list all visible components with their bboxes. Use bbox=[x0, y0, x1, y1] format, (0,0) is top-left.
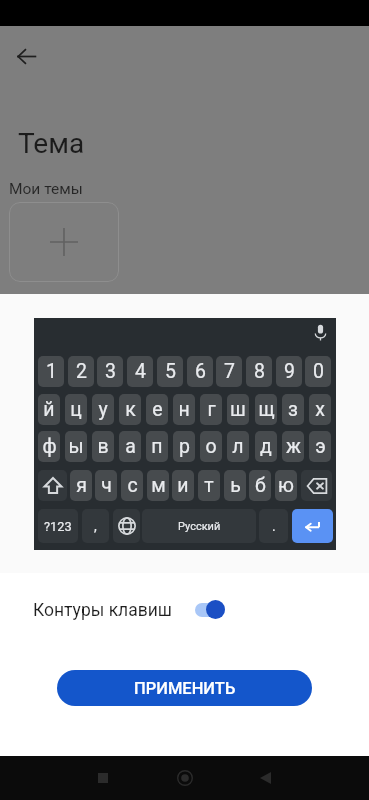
button[interactable]: щ bbox=[255, 394, 277, 425]
button[interactable]: Home bbox=[165, 758, 205, 798]
staticText: 6 bbox=[195, 360, 206, 383]
staticText: к bbox=[125, 398, 136, 421]
staticText: Контуры клавиш bbox=[33, 600, 172, 621]
button[interactable]: Русский bbox=[142, 509, 256, 543]
button[interactable]: н bbox=[173, 394, 195, 425]
button[interactable]: й bbox=[38, 394, 60, 425]
button[interactable]: э bbox=[309, 431, 331, 462]
button[interactable]: м bbox=[147, 470, 169, 501]
button[interactable]: е bbox=[146, 394, 168, 425]
button[interactable]: 7 bbox=[216, 356, 242, 387]
staticText: й bbox=[43, 398, 55, 421]
staticText: , bbox=[94, 518, 97, 534]
staticText: д bbox=[260, 435, 272, 458]
button[interactable]: ?123 bbox=[38, 509, 78, 543]
button[interactable]: 4 bbox=[127, 356, 153, 387]
button[interactable]: ч bbox=[95, 470, 117, 501]
button[interactable]: ж bbox=[282, 431, 304, 462]
button[interactable]: Key borders bbox=[193, 599, 227, 621]
button[interactable]: я bbox=[70, 470, 92, 501]
staticText: 4 bbox=[135, 360, 146, 383]
staticText: 0 bbox=[313, 360, 324, 383]
staticText: у bbox=[98, 398, 108, 421]
staticText: 9 bbox=[284, 360, 295, 383]
staticText: х bbox=[315, 398, 325, 421]
staticText: б bbox=[255, 474, 266, 497]
staticText: ?123 bbox=[44, 519, 72, 534]
staticText: Русский bbox=[178, 520, 221, 533]
button[interactable]: р bbox=[173, 431, 195, 462]
button[interactable]: г bbox=[200, 394, 222, 425]
button[interactable]: 6 bbox=[187, 356, 213, 387]
button[interactable]: п bbox=[146, 431, 168, 462]
staticText: о bbox=[205, 435, 217, 458]
button[interactable]: Контуры клавиш bbox=[0, 583, 369, 635]
staticText: ь bbox=[230, 474, 241, 497]
staticText: м bbox=[151, 474, 166, 497]
button[interactable]: Recents bbox=[83, 758, 123, 798]
button[interactable]: ы bbox=[65, 431, 87, 462]
button[interactable]: у bbox=[92, 394, 114, 425]
button[interactable]: ш bbox=[227, 394, 249, 425]
button[interactable]: 3 bbox=[97, 356, 123, 387]
button[interactable]: х bbox=[309, 394, 331, 425]
button[interactable]: в bbox=[92, 431, 114, 462]
button[interactable]: а bbox=[119, 431, 141, 462]
staticText: ы bbox=[68, 435, 84, 458]
button[interactable]: Back bbox=[10, 40, 42, 72]
staticText: ж bbox=[286, 435, 301, 458]
button[interactable]: ПРИМЕНИТЬ bbox=[57, 670, 312, 706]
button[interactable]: к bbox=[119, 394, 141, 425]
button[interactable]: 8 bbox=[246, 356, 272, 387]
button[interactable] bbox=[301, 470, 332, 501]
button[interactable]: с bbox=[121, 470, 143, 501]
staticText: ц bbox=[70, 398, 82, 421]
button[interactable]: 0 bbox=[305, 356, 331, 387]
staticText: е bbox=[152, 398, 163, 421]
button[interactable]: ц bbox=[65, 394, 87, 425]
button[interactable]: ю bbox=[275, 470, 297, 501]
staticText: 8 bbox=[254, 360, 265, 383]
staticText: п bbox=[151, 435, 163, 458]
staticText: 5 bbox=[165, 360, 176, 383]
button[interactable]: . bbox=[259, 509, 288, 543]
button[interactable]: з bbox=[282, 394, 304, 425]
staticText: ю bbox=[278, 474, 294, 497]
button[interactable]: Voice input bbox=[311, 323, 330, 342]
button[interactable]: Enter bbox=[292, 509, 333, 543]
button[interactable]: 2 bbox=[68, 356, 94, 387]
button[interactable]: , bbox=[82, 509, 109, 543]
staticText: г bbox=[207, 398, 216, 421]
staticText: . bbox=[272, 518, 276, 534]
button[interactable]: и bbox=[172, 470, 194, 501]
staticText: 2 bbox=[76, 360, 87, 383]
button[interactable]: Add theme bbox=[9, 202, 119, 282]
button[interactable]: 9 bbox=[276, 356, 302, 387]
button[interactable]: Back bbox=[245, 758, 285, 798]
button[interactable]: Change language bbox=[113, 509, 140, 543]
button[interactable]: ь bbox=[224, 470, 246, 501]
staticText: 7 bbox=[224, 360, 235, 383]
button[interactable]: б bbox=[249, 470, 271, 501]
button[interactable]: д bbox=[255, 431, 277, 462]
staticText: Тема bbox=[18, 127, 85, 160]
staticText: н bbox=[178, 398, 190, 421]
staticText: с bbox=[127, 474, 138, 497]
staticText: ш bbox=[230, 398, 246, 421]
staticText: з bbox=[288, 398, 298, 421]
staticText: т bbox=[204, 474, 214, 497]
staticText: Мои темы bbox=[9, 180, 83, 198]
button[interactable]: л bbox=[227, 431, 249, 462]
staticText: ПРИМЕНИТЬ bbox=[134, 679, 236, 698]
button[interactable]: 5 bbox=[157, 356, 183, 387]
staticText: р bbox=[179, 435, 190, 458]
staticText: в bbox=[97, 435, 109, 458]
button[interactable]: т bbox=[198, 470, 220, 501]
staticText: щ bbox=[258, 398, 275, 421]
button[interactable] bbox=[38, 470, 67, 501]
button[interactable]: 1 bbox=[38, 356, 64, 387]
button[interactable]: ф bbox=[38, 431, 60, 462]
staticText: 1 bbox=[46, 360, 57, 383]
button[interactable]: о bbox=[200, 431, 222, 462]
staticText: а bbox=[125, 435, 136, 458]
